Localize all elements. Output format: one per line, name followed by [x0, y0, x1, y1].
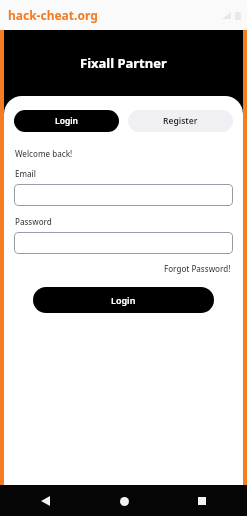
staticText: Fixall Partner [80, 54, 167, 72]
staticText: Login [55, 115, 79, 127]
button[interactable]: Forgot Password! [162, 261, 233, 276]
staticText: Login [111, 294, 136, 306]
button[interactable]: Login [14, 110, 119, 132]
staticText: Email [15, 168, 36, 179]
staticText: hack-cheat.org [8, 7, 98, 23]
staticText: Forgot Password! [164, 263, 231, 274]
staticText: Password [15, 216, 52, 227]
button[interactable]: Home [111, 488, 137, 514]
button[interactable] [14, 184, 233, 206]
staticText: Welcome back! [15, 148, 73, 159]
button[interactable] [14, 232, 233, 254]
button[interactable]: Back [32, 488, 58, 514]
staticText: Register [163, 115, 198, 127]
button[interactable]: Login [33, 287, 214, 313]
button[interactable]: Recent apps [189, 488, 215, 514]
button[interactable]: Register [128, 110, 233, 132]
